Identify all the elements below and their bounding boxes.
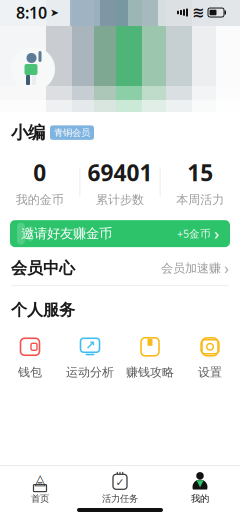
staticText: 小编 (11, 122, 45, 143)
staticText: ✓ (115, 476, 124, 488)
staticText: ≋ (192, 4, 204, 21)
staticText: 首页 (31, 493, 49, 504)
staticText: △ (34, 471, 45, 488)
button[interactable]: 青铜会员 (50, 125, 94, 140)
staticText: 活力任务 (102, 493, 138, 504)
button[interactable]: △ (0, 472, 80, 504)
button[interactable]: 钱包 (0, 334, 60, 381)
staticText: 邀请好友赚金币 (21, 225, 112, 242)
button[interactable]: 设置 (180, 334, 240, 381)
staticText: 我的 (191, 493, 209, 504)
button[interactable]: ↗ (60, 334, 120, 381)
staticText: › (224, 257, 229, 279)
staticText: ▼ (196, 478, 203, 488)
staticText: 运动分析 (66, 365, 114, 379)
staticText: 本周活力 (176, 192, 224, 207)
button[interactable]: 赚钱攻略 (120, 334, 180, 381)
button[interactable]: 会员中心 (0, 251, 240, 285)
staticText: 赚钱攻略 (126, 365, 174, 379)
staticText: 会员加速赚 (161, 261, 221, 275)
staticText: › (214, 223, 219, 244)
staticText: ↗ (85, 338, 95, 352)
staticText: 青铜会员 (54, 127, 90, 138)
button[interactable]: 邀请好友赚金币 (10, 220, 230, 247)
staticText: +5金币 (177, 226, 211, 241)
staticText: 钱包 (18, 365, 42, 379)
staticText: 我的金币 (16, 192, 64, 207)
button[interactable]: ✓ (80, 472, 160, 504)
staticText: 会员中心 (11, 258, 75, 278)
staticText: 8:10 (16, 2, 47, 23)
staticText: ➤ (50, 6, 59, 18)
staticText: 69401 (87, 157, 152, 187)
staticText: 累计步数 (96, 192, 144, 207)
staticText: 0 (33, 157, 46, 187)
button[interactable]: ▼ (160, 472, 240, 504)
staticText: 个人服务 (11, 300, 75, 320)
staticText: 设置 (198, 365, 222, 379)
staticText: 15 (187, 157, 213, 187)
